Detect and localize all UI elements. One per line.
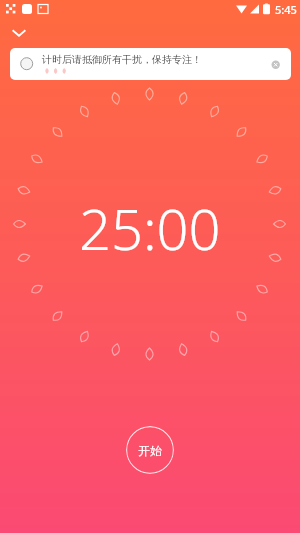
button[interactable]: 计时后请抵御所有干扰，保持专注！ [10, 48, 291, 80]
staticText: 计时后请抵御所有干扰，保持专注！ [42, 53, 202, 66]
button[interactable]: Collapse [6, 20, 32, 46]
staticText: 25:00 [79, 190, 221, 266]
button[interactable]: 开始 [126, 426, 174, 474]
staticText: 5:45 [275, 2, 297, 17]
staticText: 开始 [138, 443, 162, 458]
